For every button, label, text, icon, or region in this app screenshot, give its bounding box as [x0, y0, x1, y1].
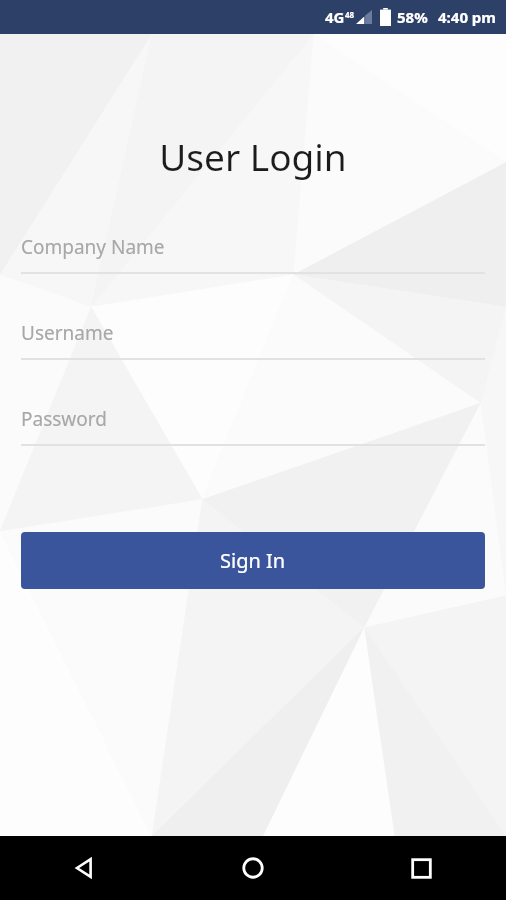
staticText: 48 — [345, 9, 355, 20]
button[interactable]: Username — [21, 320, 485, 360]
button[interactable]: Back — [0, 836, 168, 900]
button[interactable]: Company Name — [21, 234, 485, 274]
staticText: 58% — [397, 7, 428, 27]
staticText: Sign In — [220, 547, 286, 574]
staticText: 4:40 pm — [438, 7, 496, 27]
button[interactable]: Recent apps — [337, 836, 506, 900]
button[interactable]: Sign In — [21, 532, 485, 589]
staticText: Username — [21, 320, 114, 346]
staticText: User Login — [0, 131, 506, 181]
staticText: Password — [21, 406, 107, 432]
staticText: Company Name — [21, 234, 165, 260]
button[interactable]: Password — [21, 406, 485, 446]
staticText: 4G — [325, 7, 345, 27]
button[interactable]: Home — [168, 836, 337, 900]
